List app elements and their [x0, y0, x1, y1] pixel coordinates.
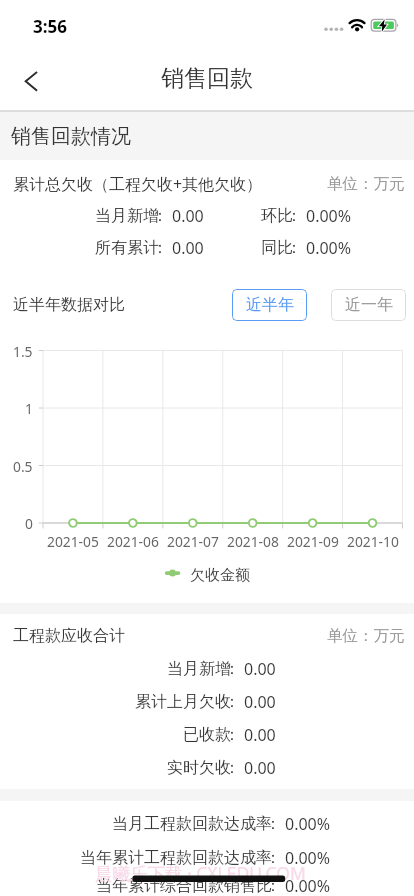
staticText: 所有累计: [95, 238, 159, 258]
button[interactable]: 近半年: [232, 289, 307, 321]
staticText: 2021-07: [167, 532, 219, 550]
staticText: 环比: [261, 206, 293, 226]
staticText: ：: [224, 692, 237, 712]
staticText: 3:56: [33, 15, 67, 38]
staticText: 销售回款情况: [11, 124, 131, 149]
staticText: 0.00: [244, 724, 276, 746]
staticText: 当月工程款回款达成率: [112, 814, 272, 834]
staticText: 当年累计综合回款销售比: [96, 876, 272, 896]
staticText: 累计总欠收（工程欠收+其他欠收）: [13, 173, 263, 195]
staticText: 0.00: [244, 658, 276, 680]
staticText: ：: [265, 848, 278, 868]
staticText: 销售回款: [161, 64, 253, 93]
staticText: 1.5: [13, 342, 33, 360]
staticText: ：: [152, 238, 165, 258]
staticText: ：: [224, 758, 237, 778]
staticText: 近半年数据对比: [13, 295, 125, 315]
staticText: 实时欠收: [167, 758, 231, 778]
staticText: 欠收金额: [190, 566, 250, 585]
staticText: 0.5: [13, 457, 33, 475]
staticText: 2021-06: [107, 532, 159, 550]
staticText: 当月新增: [95, 206, 159, 226]
staticText: 2021-09: [287, 532, 339, 550]
staticText: 单位：万元: [327, 174, 405, 194]
staticText: 工程款应收合计: [13, 626, 125, 646]
staticText: ：: [286, 238, 299, 258]
staticText: 0.00%: [306, 205, 352, 227]
staticText: 2021-05: [47, 532, 99, 550]
staticText: 0: [25, 514, 33, 532]
button[interactable]: Back: [8, 55, 52, 99]
staticText: ：: [152, 206, 165, 226]
staticText: 0.00%: [285, 875, 331, 896]
staticText: 已收款: [183, 725, 231, 745]
staticText: ：: [224, 659, 237, 679]
staticText: 2021-08: [227, 532, 279, 550]
staticText: 1: [25, 399, 33, 417]
staticText: 同比: [261, 238, 293, 258]
staticText: ：: [224, 725, 237, 745]
button[interactable]: 近一年: [331, 289, 406, 321]
staticText: 累计上月欠收: [135, 692, 231, 712]
staticText: 0.00: [244, 691, 276, 713]
staticText: 近一年: [345, 295, 393, 315]
staticText: 0.00%: [306, 237, 352, 259]
staticText: 0.00: [244, 757, 276, 779]
staticText: ：: [265, 876, 278, 896]
staticText: 当月新增: [167, 659, 231, 679]
staticText: 当年累计工程款回款达成率: [80, 848, 272, 868]
staticText: 2021-10: [347, 532, 399, 550]
staticText: 近半年: [246, 295, 294, 315]
staticText: ：: [286, 206, 299, 226]
staticText: 0.00: [172, 237, 204, 259]
staticText: ：: [265, 814, 278, 834]
staticText: 单位：万元: [327, 626, 405, 646]
staticText: 0.00%: [285, 813, 331, 835]
staticText: 0.00: [172, 205, 204, 227]
staticText: 晨曦乐下载 · CXLEDU.COM: [95, 861, 306, 885]
staticText: 0.00%: [285, 847, 331, 869]
